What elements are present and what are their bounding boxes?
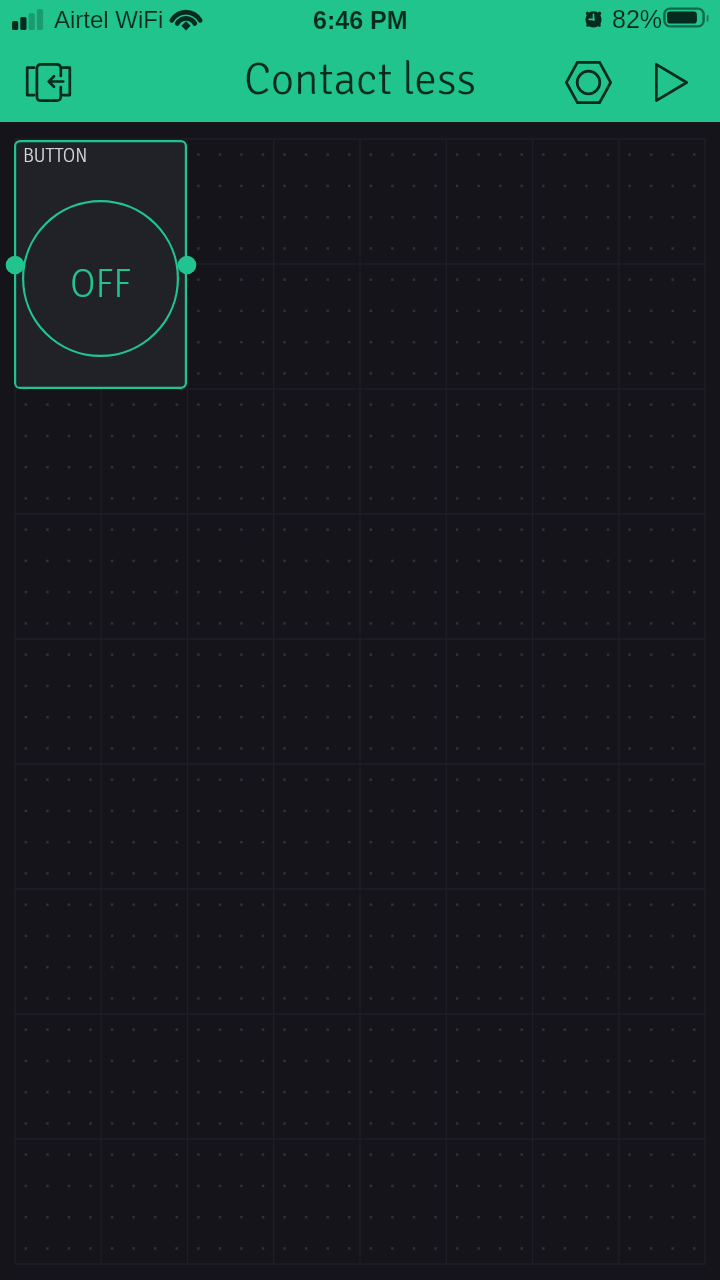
button[interactable]: BUTTON bbox=[14, 140, 187, 389]
staticText: 6:46 PM bbox=[313, 6, 408, 34]
staticText: Airtel WiFi bbox=[54, 6, 164, 33]
staticText: Contact less bbox=[244, 52, 477, 107]
button[interactable]: Play bbox=[633, 44, 709, 120]
button[interactable]: Settings bbox=[550, 42, 626, 122]
staticText: OFF bbox=[70, 259, 132, 308]
staticText: BUTTON bbox=[23, 143, 88, 167]
button[interactable]: Exit bbox=[10, 42, 86, 118]
staticText: 82% bbox=[612, 5, 663, 33]
